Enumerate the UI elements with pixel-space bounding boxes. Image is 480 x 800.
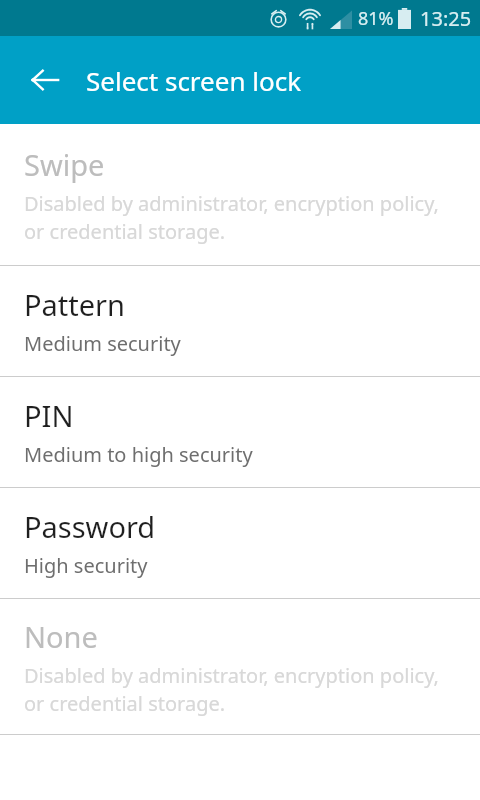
button[interactable]: Swipe	[0, 124, 480, 265]
staticText: 81%	[358, 6, 394, 31]
button[interactable]: PIN	[0, 377, 480, 487]
staticText: Disabled by administrator, encryption po…	[24, 190, 458, 245]
button[interactable]: Password	[0, 488, 480, 598]
staticText: Disabled by administrator, encryption po…	[24, 662, 458, 717]
staticText: Password	[24, 507, 156, 546]
staticText: Swipe	[24, 145, 105, 184]
staticText: High security	[24, 552, 148, 579]
staticText: Medium to high security	[24, 441, 253, 468]
staticText: None	[24, 617, 98, 656]
staticText: PIN	[24, 396, 74, 435]
button[interactable]: Pattern	[0, 266, 480, 376]
staticText: Medium security	[24, 330, 181, 357]
staticText: 13:25	[420, 5, 472, 32]
button[interactable]: None	[0, 599, 480, 734]
staticText: Pattern	[24, 285, 126, 324]
button[interactable]: Back	[20, 55, 70, 105]
staticText: Select screen lock	[86, 63, 302, 98]
